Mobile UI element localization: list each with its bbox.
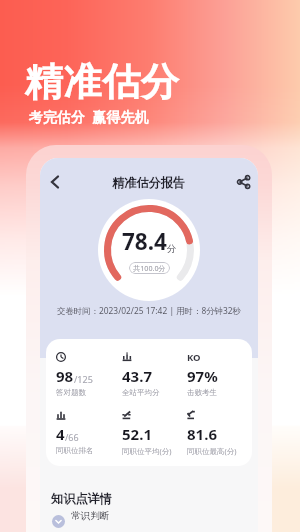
staticText: 交卷时间：2023/02/25 17:42 | 用时：8分钟32秒 — [57, 305, 241, 316]
staticText: 4 — [56, 424, 65, 444]
button[interactable]: Share — [234, 172, 254, 192]
staticText: 97% — [187, 366, 218, 386]
staticText: 共100.0分 — [133, 263, 166, 273]
staticText: 常识判断 — [71, 510, 110, 522]
staticText: 同职位平均(分) — [122, 446, 172, 456]
staticText: 精准估分报告 — [112, 175, 186, 190]
staticText: 同职位最高(分) — [187, 446, 237, 456]
staticText: 全站平均分 — [122, 388, 160, 397]
staticText: 43.7 — [122, 366, 152, 386]
staticText: 分 — [167, 243, 177, 255]
staticText: 答对题数 — [56, 388, 86, 397]
staticText: 考完估分 赢得先机 — [29, 107, 149, 126]
staticText: 78.4 — [122, 226, 167, 257]
staticText: 81.6 — [187, 424, 217, 444]
staticText: 击败考生 — [187, 388, 217, 397]
staticText: 知识点详情 — [51, 491, 112, 506]
staticText: /125 — [74, 373, 93, 385]
staticText: KO — [187, 351, 201, 362]
staticText: 精准估分 — [25, 58, 180, 106]
staticText: 52.1 — [122, 424, 152, 444]
staticText: /66 — [65, 431, 79, 443]
button[interactable]: Back — [44, 171, 66, 193]
staticText: 98 — [56, 366, 74, 386]
staticText: 同职位排名 — [56, 446, 94, 455]
